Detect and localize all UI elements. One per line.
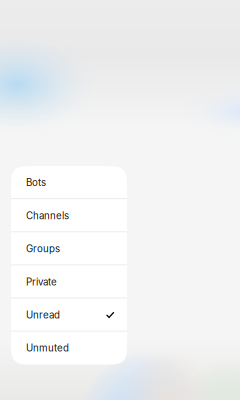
button[interactable]: Channels [11,199,127,232]
button[interactable]: Groups [11,232,127,265]
staticText: Unmuted [26,342,69,354]
button[interactable]: Bots [11,166,127,199]
staticText: Unread [26,309,60,321]
button[interactable]: Unmuted [11,331,127,365]
staticText: Groups [26,243,60,255]
staticText: Bots [26,177,46,188]
staticText: Private [26,276,57,288]
button[interactable]: Unread [11,298,127,331]
staticText: Channels [26,210,69,222]
button[interactable]: Private [11,265,127,298]
